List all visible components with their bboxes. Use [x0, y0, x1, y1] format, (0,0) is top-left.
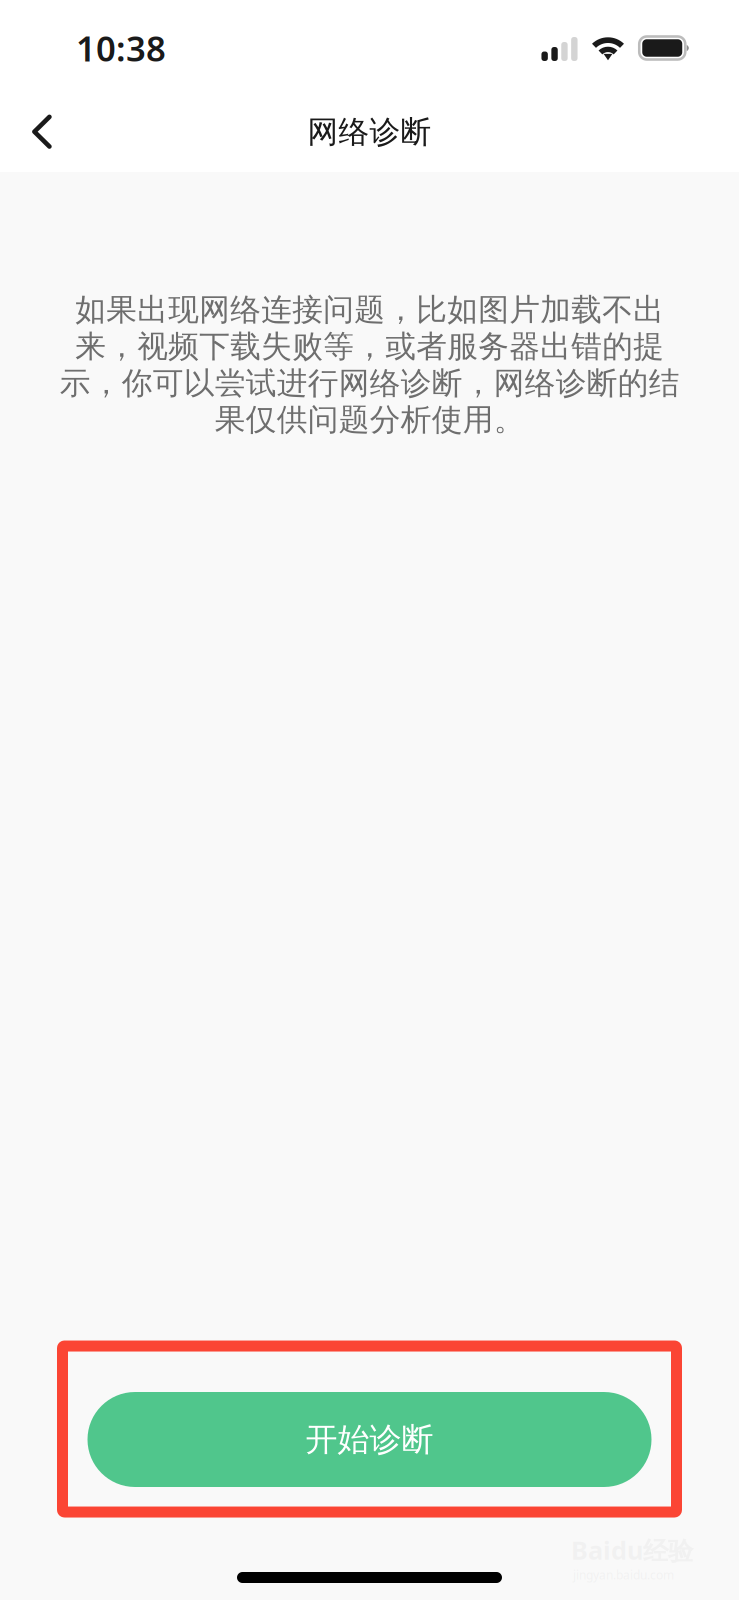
button[interactable]: Back: [11, 101, 73, 163]
button[interactable]: 开始诊断: [87, 1392, 651, 1487]
staticText: 如果出现网络连接问题，比如图片加载不出来，视频下载失败等，或者服务器出错的提示，…: [59, 291, 679, 439]
staticText: 网络诊断: [307, 113, 431, 151]
staticText: 开始诊断: [305, 1420, 433, 1459]
staticText: 10:38: [76, 25, 166, 71]
staticText: Baidu经验: [571, 1533, 693, 1567]
